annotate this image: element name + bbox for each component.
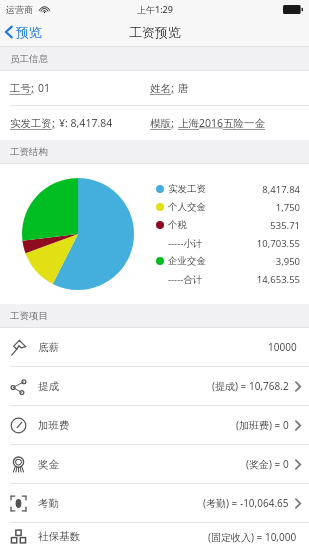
staticText: -----小计 — [168, 237, 228, 250]
button[interactable]: 预览 — [0, 21, 50, 43]
staticText: 535.71 — [228, 219, 300, 232]
staticText: 个税 — [168, 219, 228, 231]
button[interactable]: 实发工资: — [0, 106, 309, 140]
staticText: (奖金) = 0 — [246, 457, 289, 471]
staticText: 工资项目 — [10, 310, 48, 322]
staticText: (考勤) = -10,064.65 — [203, 496, 289, 510]
staticText: 工资结构 — [10, 146, 48, 158]
staticText: 上海2016五险一金 — [178, 116, 266, 130]
staticText: (加班费) = 0 — [236, 418, 289, 432]
staticText: 企业交金 — [168, 255, 228, 267]
staticText: 实发工资 — [168, 183, 228, 195]
staticText: 工号: — [10, 81, 34, 95]
button[interactable]: Share — [0, 367, 309, 405]
button[interactable]: Pin — [0, 328, 309, 366]
staticText: 员工信息 — [10, 53, 48, 65]
other: Share — [10, 378, 27, 395]
staticText: 10000 — [268, 340, 297, 354]
staticText: 1,750 — [228, 201, 300, 214]
button[interactable]: 工号: — [0, 71, 309, 105]
button[interactable]: Social insurance — [0, 523, 309, 550]
staticText: 预览 — [16, 24, 42, 40]
staticText: 运营商 — [6, 4, 33, 15]
staticText: 社保基数 — [38, 530, 80, 543]
staticText: 奖金 — [38, 458, 59, 471]
staticText: 模版: — [150, 116, 174, 130]
button[interactable]: Attendance — [0, 484, 309, 522]
staticText: 工资预览 — [129, 24, 181, 40]
staticText: (提成) = 10,768.2 — [212, 379, 289, 393]
staticText: 提成 — [38, 380, 59, 393]
staticText: 3,950 — [228, 255, 300, 268]
other: Bonus — [10, 456, 27, 473]
staticText: ¥: 8,417.84 — [59, 116, 113, 130]
staticText: 唐 — [178, 82, 189, 95]
staticText: 考勤 — [38, 497, 59, 510]
staticText: 10,703.55 — [228, 237, 300, 250]
staticText: 实发工资: — [10, 116, 55, 130]
other: Social insurance — [10, 528, 27, 545]
button[interactable]: Bonus — [0, 445, 309, 483]
staticText: 个人交金 — [168, 201, 228, 213]
staticText: -----合计 — [168, 273, 228, 286]
staticText: 8,417.84 — [228, 183, 300, 196]
button[interactable]: Overtime — [0, 406, 309, 444]
staticText: (固定收入) = 10,000 — [208, 530, 297, 544]
staticText: 01 — [38, 81, 51, 95]
other: Attendance — [10, 495, 27, 512]
staticText: 加班费 — [38, 419, 70, 432]
staticText: 14,653.55 — [228, 273, 300, 286]
other: Pin — [10, 339, 27, 356]
staticText: 底薪 — [38, 341, 59, 354]
other: Overtime — [10, 417, 27, 434]
staticText: 上午1:29 — [137, 3, 173, 15]
staticText: 姓名: — [150, 81, 174, 95]
